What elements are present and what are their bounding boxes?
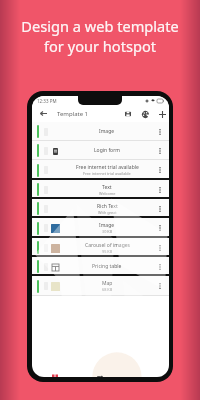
staticText: Rich Text: [97, 203, 118, 210]
staticText: 12:33 PM: [37, 98, 57, 104]
staticText: 68 KB: [102, 287, 113, 292]
button[interactable]: More options: [154, 141, 166, 160]
button[interactable]: More options: [154, 257, 166, 276]
staticText: Design a web template: [21, 16, 179, 36]
staticText: Map: [102, 280, 113, 287]
button[interactable]: Image: [32, 122, 169, 141]
button[interactable]: More options: [154, 238, 166, 257]
button[interactable]: Text: [32, 180, 169, 199]
button[interactable]: Save: [122, 108, 134, 120]
staticText: 30 KB: [102, 229, 113, 234]
staticText: Pricing table: [92, 263, 122, 270]
staticText: Welcome: [99, 191, 116, 196]
staticText: Image: [99, 128, 115, 135]
button[interactable]: More options: [154, 218, 166, 238]
button[interactable]: More options: [154, 180, 166, 199]
staticText: Free internet trial available: [76, 164, 139, 171]
button[interactable]: Rich Text: [32, 199, 169, 218]
button[interactable]: Carousel of images: [32, 238, 169, 257]
button[interactable]: More options: [154, 199, 166, 218]
button[interactable]: Add: [156, 108, 168, 120]
staticText: Free internet trial available: [83, 171, 131, 176]
button[interactable]: Map: [32, 276, 169, 296]
staticText: Carousel of images: [85, 242, 130, 249]
staticText: With great: [98, 210, 117, 215]
button[interactable]: Free internet trial available: [32, 160, 169, 180]
button[interactable]: More options: [154, 276, 166, 296]
button[interactable]: Image: [32, 218, 169, 238]
button[interactable]: Back: [38, 108, 49, 119]
staticText: Text: [102, 184, 112, 191]
staticText: Image: [99, 222, 115, 229]
button[interactable]: More options: [154, 122, 166, 141]
button[interactable]: Pricing table: [32, 257, 169, 276]
button[interactable]: More options: [154, 160, 166, 180]
button[interactable]: Login form: [32, 141, 169, 160]
button[interactable]: Theme: [139, 108, 151, 120]
staticText: for your hotspot: [44, 36, 156, 56]
staticText: Login form: [94, 147, 120, 154]
staticText: 95 KB: [102, 249, 113, 254]
staticText: Template 1: [57, 110, 89, 118]
